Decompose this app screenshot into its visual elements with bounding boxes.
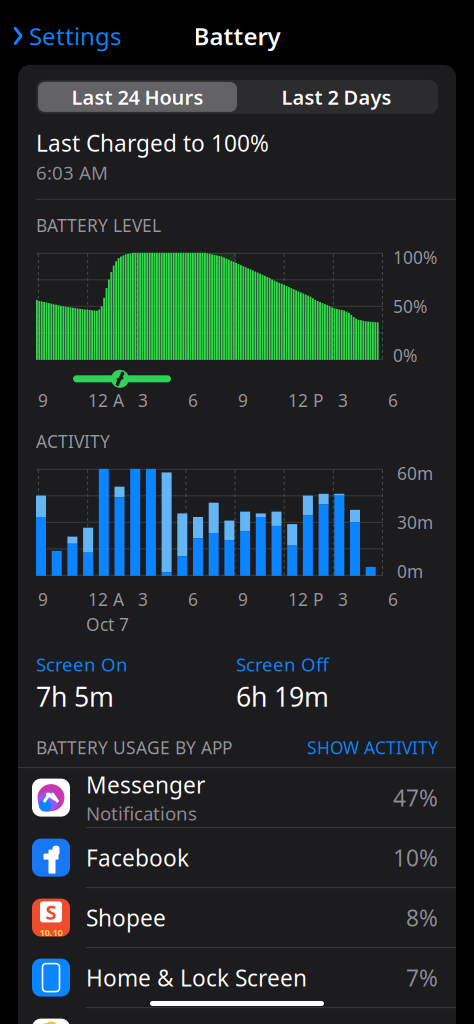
staticText: Messenger [86,770,205,800]
staticText: 10.10 [39,926,62,939]
staticText: 9 [238,588,248,611]
button[interactable]: Photos [18,1008,456,1024]
staticText: 6 [188,389,198,412]
staticText: 3 [138,588,148,611]
staticText: Facebook [86,842,189,873]
button[interactable]: Home & Lock Screen [18,948,456,1007]
staticText: Home & Lock Screen [86,962,307,993]
staticText: 6 [388,389,398,412]
staticText: 9 [38,389,48,412]
staticText: 6 [388,588,398,611]
staticText: 30m [397,511,433,534]
staticText: 10% [393,842,438,873]
staticText: 12 P [288,389,323,412]
button[interactable]: Screen On [36,652,128,677]
button[interactable]: Last 24 Hours [38,82,237,112]
staticText: 60m [397,462,433,485]
button[interactable]: S [18,888,456,947]
staticText: 9 [238,389,248,412]
staticText: 12 P [288,588,323,611]
button[interactable]: SHOW ACTIVITY [307,736,438,759]
staticText: 8% [406,902,438,933]
staticText: 9 [38,588,48,611]
staticText: 100% [393,246,437,269]
staticText: 6h 19m [236,679,329,714]
staticText: 50% [393,295,427,318]
staticText: Screen On [36,652,128,677]
staticText: BATTERY USAGE BY APP [36,736,232,759]
staticText: 0% [393,344,417,367]
staticText: S [45,899,56,925]
staticText: 6 [188,588,198,611]
staticText: ACTIVITY [36,430,110,453]
staticText: Battery [193,20,280,52]
staticText: Last Charged to 100% [36,128,269,158]
staticText: 12 A [88,588,124,611]
staticText: 3 [338,389,348,412]
staticText: Oct 7 [86,613,129,636]
staticText: Notifications [86,801,197,826]
staticText: 12 A [88,389,124,412]
staticText: 7h 5m [36,679,114,714]
staticText: Screen Off [236,652,329,677]
staticText: 0m [397,560,423,583]
staticText: 3 [338,588,348,611]
staticText: SHOW ACTIVITY [307,736,438,759]
staticText: 7% [406,962,438,993]
button[interactable]: Messenger [18,768,456,827]
staticText: 6:03 AM [36,160,108,185]
staticText: 47% [393,782,438,813]
staticText: 3 [138,389,148,412]
staticText: BATTERY LEVEL [36,214,161,237]
staticText: Last 24 Hours [71,84,203,110]
button[interactable]: Screen Off [236,652,329,677]
staticText: Last 2 Days [281,84,391,110]
staticText: Shopee [86,902,166,933]
staticText: Settings [29,20,121,52]
button[interactable]: Settings [8,14,125,58]
button[interactable]: Last 2 Days [237,82,436,112]
button[interactable]: Facebook [18,828,456,887]
